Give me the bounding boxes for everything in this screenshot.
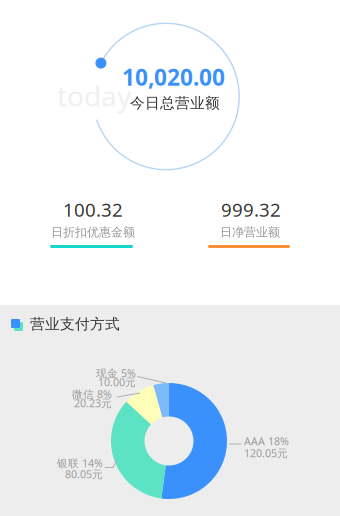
staticText: 微信 8% xyxy=(72,387,112,401)
staticText: 今日总营业额 xyxy=(130,94,220,112)
staticText: 120.05元 xyxy=(244,446,288,460)
staticText: 80.05元 xyxy=(65,467,103,481)
staticText: 日折扣优惠金额 xyxy=(51,225,135,240)
staticText: 100.32 xyxy=(63,197,123,222)
staticText: 营业支付方式 xyxy=(30,315,120,333)
staticText: 银联 14% xyxy=(57,456,103,470)
staticText: 20.23元 xyxy=(74,396,112,410)
staticText: 10.00元 xyxy=(98,375,136,389)
staticText: today xyxy=(57,77,131,114)
staticText: 10,020.00 xyxy=(122,62,225,92)
staticText: 现金 5% xyxy=(96,366,136,380)
staticText: AAA 18% xyxy=(244,434,289,448)
staticText: 日净营业额 xyxy=(220,225,280,240)
staticText: 999.32 xyxy=(221,197,281,222)
